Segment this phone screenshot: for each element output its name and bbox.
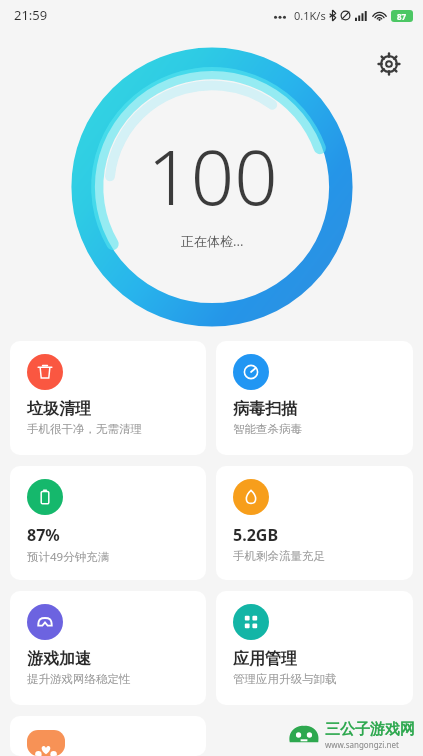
button[interactable]: 5.2GB bbox=[216, 466, 413, 580]
staticText: 病毒扫描 bbox=[233, 399, 297, 419]
staticText: 正在体检... bbox=[181, 232, 244, 250]
button[interactable] bbox=[10, 716, 206, 756]
button[interactable]: 病毒扫描 bbox=[216, 341, 413, 455]
staticText: 0.1K/s bbox=[294, 8, 326, 23]
staticText: 预计49分钟充满 bbox=[27, 549, 110, 565]
staticText: 手机剩余流量充足 bbox=[233, 549, 325, 563]
staticText: 垃圾清理 bbox=[27, 399, 91, 419]
staticText: 5.2GB bbox=[233, 524, 279, 546]
staticText: 手机很干净，无需清理 bbox=[27, 422, 142, 436]
staticText: 提升游戏网络稳定性 bbox=[27, 672, 131, 686]
button[interactable]: 应用管理 bbox=[216, 591, 413, 705]
staticText: 三公子游戏网 bbox=[325, 720, 415, 739]
button[interactable]: 垃圾清理 bbox=[10, 341, 206, 455]
staticText: 游戏加速 bbox=[27, 649, 91, 669]
staticText: 应用管理 bbox=[233, 649, 297, 669]
staticText: 87% bbox=[27, 524, 60, 546]
staticText: www.sangongzi.net bbox=[325, 739, 399, 750]
staticText: 管理应用升级与卸载 bbox=[233, 672, 337, 686]
staticText: 21:59 bbox=[14, 6, 48, 24]
button[interactable]: Settings bbox=[369, 44, 409, 84]
staticText: 87 bbox=[397, 11, 407, 22]
button[interactable]: 游戏加速 bbox=[10, 591, 206, 705]
staticText: 智能查杀病毒 bbox=[233, 422, 302, 436]
staticText: 100 bbox=[147, 124, 278, 228]
button[interactable]: 87% bbox=[10, 466, 206, 580]
